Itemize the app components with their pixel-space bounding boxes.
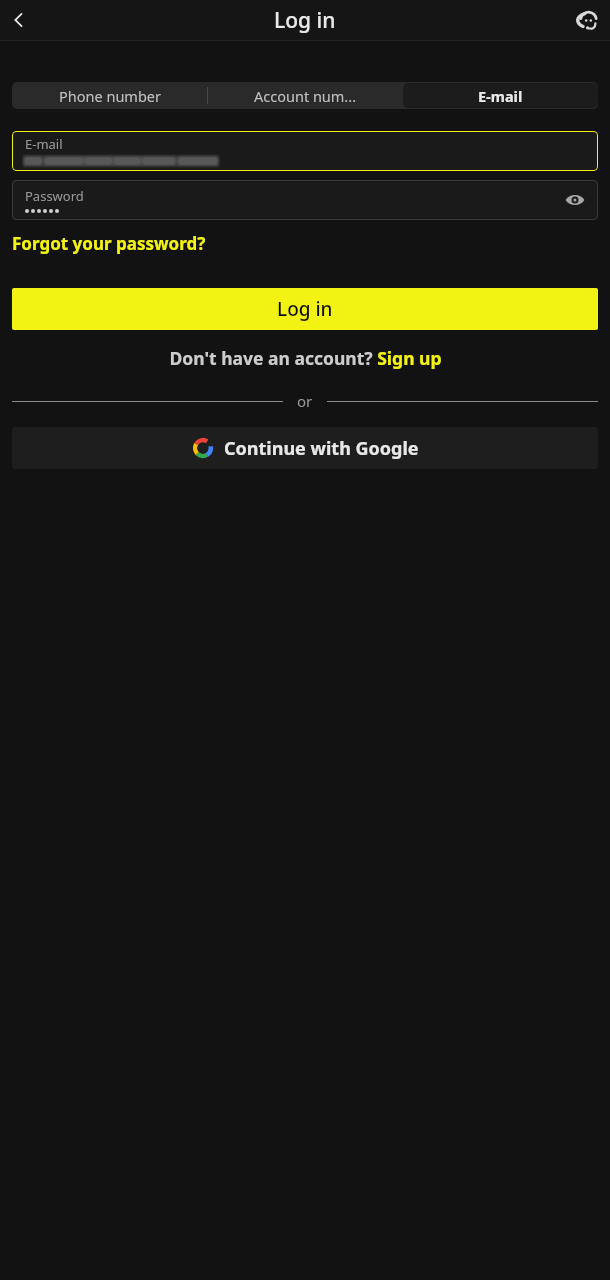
- staticText: Forgot your password?: [12, 232, 206, 255]
- button[interactable]: Back: [4, 5, 34, 35]
- staticText: Log in: [274, 6, 336, 35]
- button[interactable]: Log in: [12, 288, 598, 330]
- button[interactable]: Phone number: [12, 82, 208, 109]
- staticText: E-mail: [478, 86, 523, 106]
- button[interactable]: Show password: [560, 185, 590, 215]
- staticText: Account num...: [254, 86, 357, 106]
- staticText: Password: [25, 187, 84, 205]
- staticText: Don't have an account? Sign up: [169, 346, 442, 370]
- button[interactable]: Account num...: [208, 82, 403, 109]
- staticText: Phone number: [59, 86, 161, 106]
- staticText: Continue with Google: [224, 436, 419, 461]
- staticText: Log in: [277, 296, 333, 322]
- staticText: E-mail: [25, 135, 63, 153]
- button[interactable]: E-mail: [403, 83, 598, 108]
- button[interactable]: Continue with Google: [12, 427, 598, 469]
- button[interactable]: Password: [12, 180, 598, 220]
- staticText: or: [297, 391, 313, 411]
- button[interactable]: Support: [572, 4, 604, 36]
- button[interactable]: E-mail: [12, 131, 598, 171]
- button[interactable]: Don't have an account? Sign up: [169, 346, 442, 370]
- button[interactable]: Forgot your password?: [12, 230, 206, 257]
